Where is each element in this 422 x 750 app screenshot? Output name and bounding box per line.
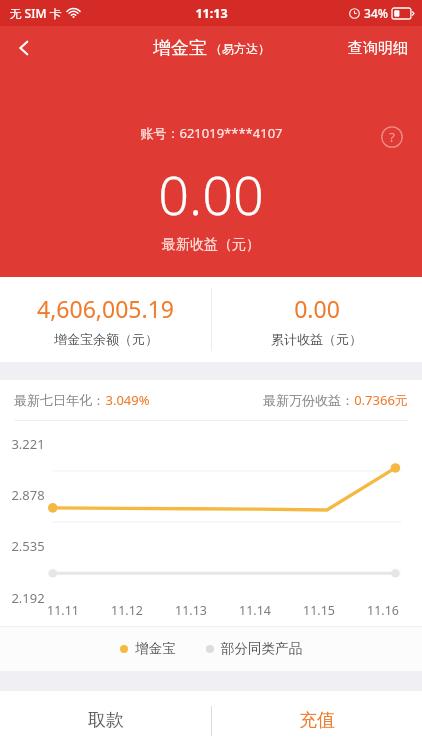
staticText: 增金宝 <box>153 37 207 60</box>
staticText: 2.878 <box>11 486 45 504</box>
button[interactable]: Help <box>370 115 414 159</box>
staticText: 3.049% <box>105 391 150 409</box>
staticText: 累计收益（元） <box>271 331 362 347</box>
staticText: 11.14 <box>239 602 271 619</box>
staticText: 无 SIM 卡 <box>9 5 62 21</box>
button[interactable]: 取款 <box>0 691 211 750</box>
staticText: 4,606,005.19 <box>37 293 174 324</box>
staticText: 取款 <box>88 709 124 732</box>
staticText: 充值 <box>299 709 335 732</box>
button[interactable]: 0.00 <box>211 277 422 362</box>
staticText: 11.13 <box>175 602 207 619</box>
staticText: ? <box>389 128 395 146</box>
staticText: 部分同类产品 <box>221 640 302 657</box>
staticText: 最新七日年化： <box>14 392 105 408</box>
button[interactable]: 4,606,005.19 <box>0 277 211 362</box>
staticText: 查询明细 <box>348 39 408 58</box>
staticText: 2.535 <box>11 537 45 555</box>
staticText: 11.16 <box>367 602 399 619</box>
staticText: 11.11 <box>47 602 79 619</box>
button[interactable]: Back <box>0 26 48 70</box>
staticText: 3.221 <box>11 435 45 453</box>
staticText: 0.00 <box>158 157 264 231</box>
staticText: 账号：621019****4107 <box>140 124 283 142</box>
staticText: 最新收益（元） <box>162 236 260 254</box>
staticText: 0.00 <box>294 293 340 324</box>
staticText: 11.15 <box>303 602 335 619</box>
staticText: 34% <box>364 5 388 21</box>
staticText: （易方达） <box>210 41 270 56</box>
staticText: 11:13 <box>195 5 228 22</box>
staticText: 最新万份收益： <box>263 392 354 408</box>
button[interactable]: 充值 <box>211 691 422 750</box>
staticText: 11.12 <box>111 602 143 619</box>
staticText: 0.7366元 <box>354 391 408 409</box>
staticText: 增金宝余额（元） <box>54 331 158 347</box>
staticText: 增金宝 <box>135 640 176 657</box>
staticText: 2.192 <box>11 589 45 607</box>
button[interactable]: 查询明细 <box>334 28 422 69</box>
